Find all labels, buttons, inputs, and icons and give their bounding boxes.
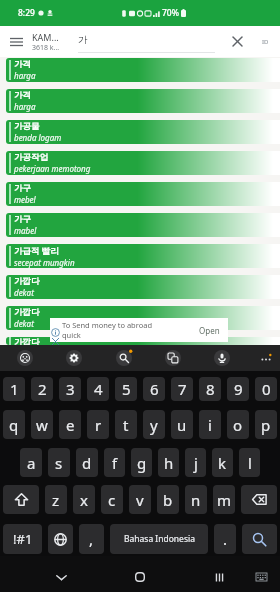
- button[interactable]: a: [20, 448, 42, 477]
- button[interactable]: Change keyboard language: [48, 524, 73, 554]
- staticText: 가격: [14, 90, 31, 101]
- button[interactable]: r: [87, 410, 109, 439]
- button[interactable]: 4: [87, 377, 109, 401]
- button[interactable]: 8: [199, 377, 221, 401]
- staticText: 8: [206, 379, 215, 399]
- button[interactable]: 가깝다: [6, 306, 280, 330]
- button[interactable]: n: [185, 485, 207, 514]
- staticText: e: [66, 415, 75, 435]
- staticText: .: [223, 529, 228, 549]
- staticText: 70%: [162, 7, 179, 19]
- button[interactable]: Search: [242, 524, 277, 554]
- staticText: ID: [262, 38, 269, 46]
- button[interactable]: y: [143, 410, 165, 439]
- button[interactable]: z: [45, 485, 67, 514]
- button[interactable]: t: [115, 410, 137, 439]
- button[interactable]: s: [48, 448, 70, 477]
- staticText: 7: [178, 379, 187, 399]
- button[interactable]: b: [157, 485, 179, 514]
- staticText: harga: [14, 101, 36, 112]
- button[interactable]: 가: [78, 26, 224, 57]
- button[interactable]: Hide keyboard: [44, 560, 78, 592]
- button[interactable]: i: [199, 410, 221, 439]
- button[interactable]: h: [158, 448, 179, 477]
- staticText: 가깝다: [14, 337, 40, 345]
- staticText: w: [36, 415, 48, 435]
- button[interactable]: m: [213, 485, 235, 514]
- button[interactable]: e: [59, 410, 81, 439]
- button[interactable]: ID: [250, 26, 280, 57]
- button[interactable]: To Send money to abroad: [50, 318, 228, 342]
- button[interactable]: 9: [227, 377, 249, 401]
- staticText: x: [80, 490, 88, 510]
- button[interactable]: ,: [79, 524, 104, 554]
- button[interactable]: 가격: [6, 89, 280, 113]
- staticText: 가깝다: [14, 276, 40, 287]
- button[interactable]: g: [131, 448, 152, 477]
- button[interactable]: Stickers: [13, 346, 37, 370]
- button[interactable]: Voice input: [210, 346, 234, 370]
- button[interactable]: Keyboard: [244, 560, 278, 592]
- button[interactable]: k: [212, 448, 233, 477]
- button[interactable]: j: [185, 448, 206, 477]
- button[interactable]: Close ad: [51, 337, 60, 346]
- button[interactable]: f: [104, 448, 125, 477]
- button[interactable]: 가깝다: [6, 337, 280, 345]
- staticText: s: [55, 453, 63, 473]
- staticText: Open: [199, 325, 220, 336]
- button[interactable]: 가급적 빨리: [6, 244, 280, 268]
- staticText: a: [27, 453, 36, 473]
- staticText: 가구: [14, 214, 31, 225]
- button[interactable]: 가구: [6, 213, 280, 237]
- button[interactable]: Clear: [224, 26, 250, 57]
- button[interactable]: Menu: [0, 26, 32, 57]
- button[interactable]: Settings: [62, 346, 86, 370]
- button[interactable]: 가깝다: [6, 275, 280, 299]
- button[interactable]: 6: [143, 377, 165, 401]
- button[interactable]: 가구: [6, 182, 280, 206]
- button[interactable]: Translate: [161, 346, 185, 370]
- button[interactable]: d: [76, 448, 98, 477]
- button[interactable]: l: [239, 448, 260, 477]
- button[interactable]: p: [255, 410, 277, 439]
- button[interactable]: Search: [112, 346, 136, 370]
- staticText: pekerjaan memotong: [14, 163, 91, 174]
- button[interactable]: 2: [31, 377, 53, 401]
- button[interactable]: 가격: [6, 58, 280, 82]
- button[interactable]: 5: [115, 377, 137, 401]
- staticText: harga: [14, 70, 36, 81]
- button[interactable]: x: [73, 485, 95, 514]
- staticText: r: [95, 415, 102, 435]
- staticText: m: [217, 490, 232, 510]
- button[interactable]: .: [214, 524, 236, 554]
- button[interactable]: !#1: [3, 524, 42, 554]
- button[interactable]: Bahasa Indonesia: [110, 524, 208, 554]
- button[interactable]: q: [3, 410, 25, 439]
- staticText: dekat: [14, 318, 34, 329]
- button[interactable]: v: [129, 485, 151, 514]
- button[interactable]: Home: [123, 560, 157, 592]
- button[interactable]: o: [227, 410, 249, 439]
- button[interactable]: 3: [59, 377, 81, 401]
- button[interactable]: w: [31, 410, 53, 439]
- button[interactable]: More options: [254, 346, 278, 370]
- staticText: KAM...: [32, 31, 59, 43]
- button[interactable]: 가공물: [6, 120, 280, 144]
- staticText: 9: [234, 379, 243, 399]
- staticText: f: [112, 453, 118, 473]
- staticText: mabel: [14, 225, 37, 236]
- button[interactable]: 7: [171, 377, 193, 401]
- button[interactable]: 0: [255, 377, 277, 401]
- staticText: 가공물: [14, 121, 40, 132]
- staticText: 6: [150, 379, 159, 399]
- staticText: 가급적 빨리: [14, 245, 59, 257]
- button[interactable]: Backspace: [241, 485, 277, 514]
- button[interactable]: u: [171, 410, 193, 439]
- button[interactable]: 가공작업: [6, 151, 280, 175]
- staticText: q: [9, 415, 19, 435]
- button[interactable]: 1: [3, 377, 25, 401]
- button[interactable]: Ad info: [51, 328, 60, 337]
- button[interactable]: Shift: [3, 485, 39, 514]
- button[interactable]: c: [101, 485, 123, 514]
- button[interactable]: Recent apps: [202, 560, 236, 592]
